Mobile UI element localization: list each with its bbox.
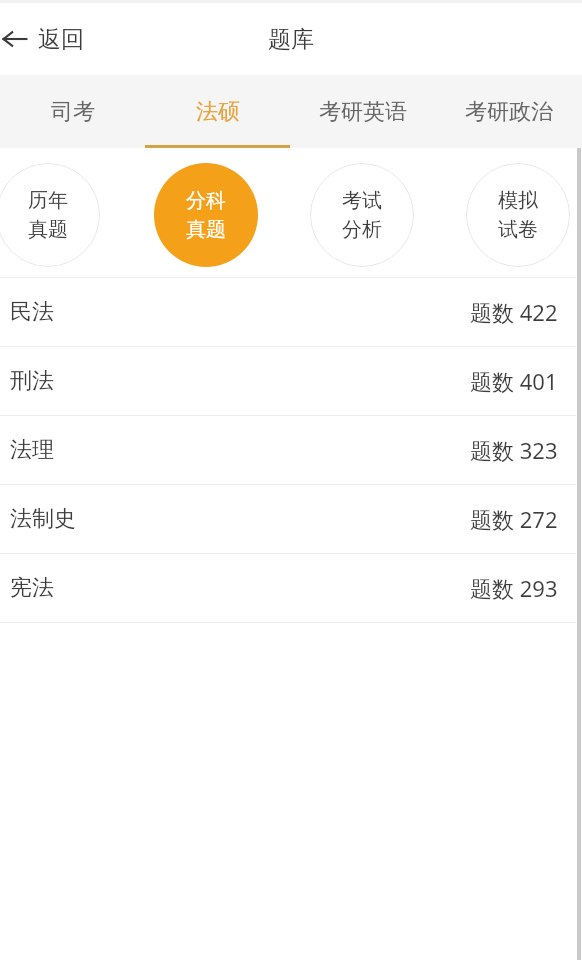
staticText: 题数 422 <box>470 297 558 327</box>
button[interactable]: 分科 <box>154 163 258 267</box>
staticText: 刑法 <box>10 367 54 395</box>
button[interactable]: 宪法 <box>0 554 582 622</box>
staticText: 模拟 <box>498 188 538 213</box>
button[interactable]: 法制史 <box>0 485 582 553</box>
staticText: 考试 <box>342 188 382 213</box>
staticText: 宪法 <box>10 574 54 602</box>
button[interactable]: 返回 <box>0 3 98 75</box>
staticText: 题库 <box>268 25 314 54</box>
button[interactable]: 民法 <box>0 278 582 346</box>
button[interactable]: 考研政治 <box>436 75 582 148</box>
staticText: 历年 <box>28 188 68 213</box>
button[interactable]: 刑法 <box>0 347 582 415</box>
staticText: 返回 <box>38 25 84 54</box>
button[interactable]: 考试 <box>310 163 414 267</box>
staticText: 题数 401 <box>470 366 558 396</box>
button[interactable]: 法理 <box>0 416 582 484</box>
staticText: 题数 323 <box>470 435 558 465</box>
staticText: 试卷 <box>498 217 538 242</box>
staticText: 分科 <box>186 188 226 213</box>
staticText: 考研英语 <box>319 98 407 126</box>
button[interactable]: 司考 <box>0 75 145 148</box>
staticText: 题数 293 <box>470 573 558 603</box>
staticText: 法理 <box>10 436 54 464</box>
button[interactable]: 模拟 <box>466 163 570 267</box>
staticText: 分析 <box>342 217 382 242</box>
staticText: 真题 <box>186 217 226 242</box>
staticText: 题数 272 <box>470 504 558 534</box>
button[interactable]: 考研英语 <box>290 75 436 148</box>
button[interactable]: 法硕 <box>145 75 290 148</box>
staticText: 法制史 <box>10 505 76 533</box>
staticText: 法硕 <box>196 98 240 126</box>
staticText: 真题 <box>28 217 68 242</box>
staticText: 司考 <box>51 98 95 126</box>
button[interactable]: 历年 <box>0 163 100 267</box>
staticText: 考研政治 <box>465 98 553 126</box>
staticText: 民法 <box>10 298 54 326</box>
